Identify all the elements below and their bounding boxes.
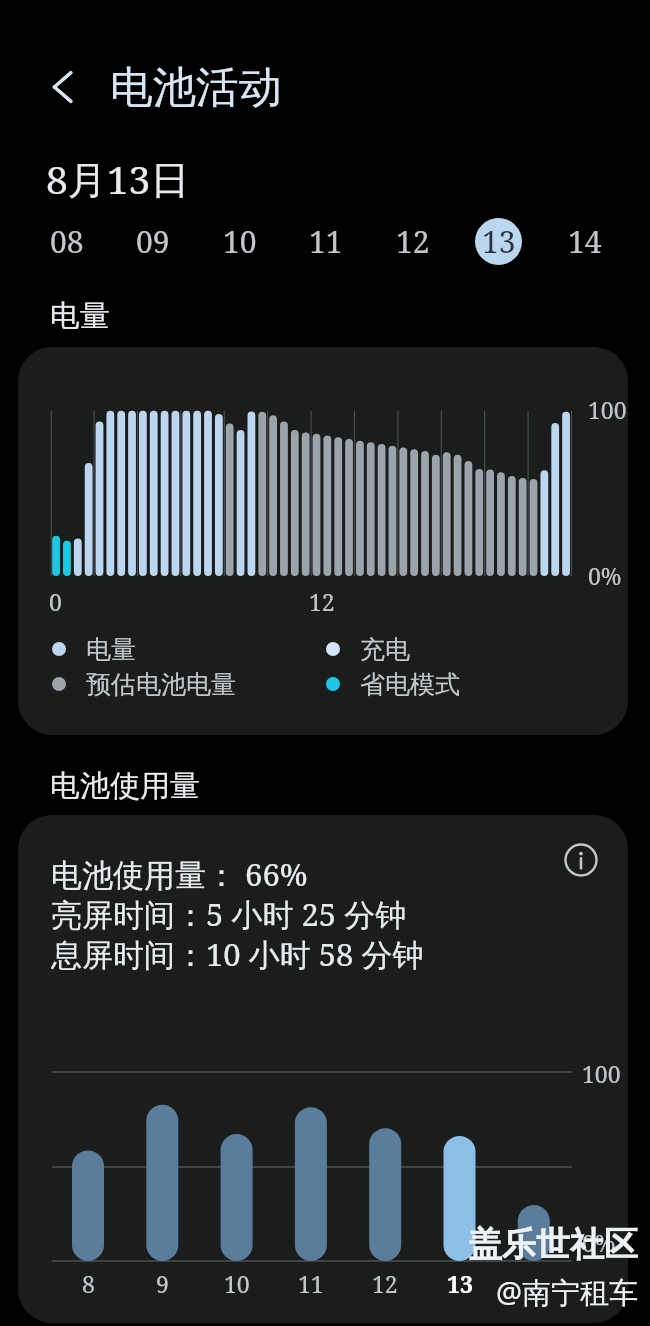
button[interactable]: Back xyxy=(40,64,86,110)
button[interactable]: 10 xyxy=(216,218,263,265)
button[interactable]: 0 xyxy=(18,347,628,735)
staticText: 8 xyxy=(82,1268,95,1299)
staticText: 12 xyxy=(309,586,335,617)
button[interactable]: 09 xyxy=(129,218,176,265)
staticText: 息屏时间：10 小时 58 分钟 xyxy=(51,933,424,973)
button[interactable]: 08 xyxy=(43,218,90,265)
button[interactable]: 充电 xyxy=(326,632,410,666)
staticText: 12 xyxy=(372,1268,398,1299)
staticText: 0% xyxy=(582,1227,616,1258)
button[interactable]: 电池使用量： 66% xyxy=(18,815,628,1323)
button[interactable]: 电量 xyxy=(52,632,136,666)
button[interactable]: 11 xyxy=(302,218,349,265)
staticText: 14 xyxy=(568,221,602,262)
staticText: 0 xyxy=(49,586,62,617)
staticText: 9 xyxy=(156,1268,169,1299)
staticText: 12 xyxy=(396,221,430,262)
staticText: 0% xyxy=(588,560,622,591)
staticText: 充电 xyxy=(360,634,410,665)
staticText: 100 xyxy=(588,394,627,425)
staticText: 电量 xyxy=(86,634,136,665)
staticText: 10 xyxy=(223,221,257,262)
staticText: 亮屏时间：5 小时 25 分钟 xyxy=(51,893,407,933)
button[interactable]: Info xyxy=(559,838,603,882)
staticText: 电池使用量： 66% xyxy=(51,853,308,893)
button[interactable]: 14 xyxy=(561,218,608,265)
staticText: @南宁租车 xyxy=(496,1272,639,1312)
staticText: 09 xyxy=(136,221,170,262)
staticText: 预估电池电量 xyxy=(86,669,236,700)
staticText: 电池活动 xyxy=(110,61,282,115)
staticText: 电池使用量 xyxy=(50,767,200,805)
staticText: 盖乐世社区 xyxy=(468,1223,638,1266)
staticText: 8月13日 xyxy=(46,152,190,205)
staticText: 省电模式 xyxy=(360,669,460,700)
staticText: 10 xyxy=(224,1268,250,1299)
staticText: 13 xyxy=(482,221,516,262)
button[interactable]: 预估电池电量 xyxy=(52,667,236,701)
staticText: 13 xyxy=(447,1268,473,1299)
staticText: 100 xyxy=(582,1058,621,1089)
button[interactable]: 12 xyxy=(389,218,436,265)
staticText: 11 xyxy=(298,1268,324,1299)
button[interactable]: 省电模式 xyxy=(326,667,460,701)
staticText: 电量 xyxy=(50,297,110,335)
staticText: 08 xyxy=(50,221,84,262)
staticText: 11 xyxy=(309,221,343,262)
button[interactable]: 13 xyxy=(475,218,522,265)
